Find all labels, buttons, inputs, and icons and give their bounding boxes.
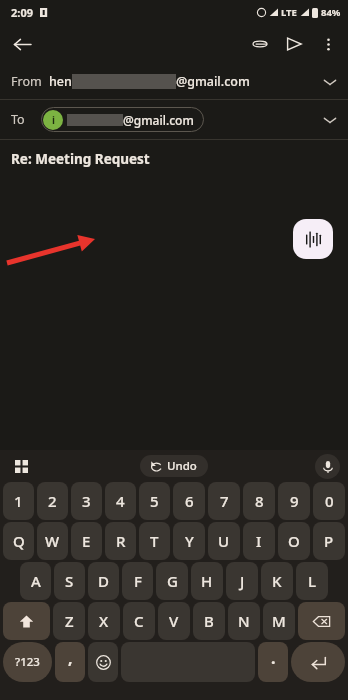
staticText: C <box>134 611 144 631</box>
button[interactable]: To <box>0 100 348 139</box>
button[interactable]: X <box>88 602 120 640</box>
button[interactable]: C <box>123 602 155 640</box>
button[interactable]: , <box>55 642 85 682</box>
button[interactable]: 7 <box>208 482 240 520</box>
button[interactable]: T <box>139 522 170 560</box>
staticText: LTE <box>281 6 297 19</box>
staticText: hen <box>49 73 72 90</box>
button[interactable]: K <box>261 562 293 600</box>
button[interactable]: U <box>208 522 240 560</box>
button[interactable]: Undo <box>140 455 208 477</box>
button[interactable]: Z <box>53 602 85 640</box>
staticText: F <box>134 571 142 591</box>
button[interactable]: Re: Meeting Request <box>0 140 348 178</box>
button[interactable]: A <box>20 562 51 600</box>
staticText: 9 <box>290 491 299 511</box>
button[interactable]: Send <box>277 27 311 61</box>
staticText: @gmail.com <box>123 112 194 128</box>
staticText: J <box>240 571 245 591</box>
button[interactable]: J <box>226 562 258 600</box>
button[interactable]: E <box>71 522 102 560</box>
staticText: 0 <box>325 491 334 511</box>
staticText: 2 <box>48 491 57 511</box>
staticText: H <box>201 571 213 591</box>
button[interactable]: 4 <box>105 482 136 520</box>
button[interactable]: Emoji <box>88 642 118 682</box>
button[interactable]: F <box>122 562 153 600</box>
button[interactable]: 5 <box>139 482 170 520</box>
button[interactable]: Voice input <box>293 219 333 259</box>
button[interactable]: Keyboard options <box>7 452 35 480</box>
button[interactable]: Enter <box>291 642 345 682</box>
staticText: V <box>169 611 179 631</box>
button[interactable]: More options <box>311 27 345 61</box>
staticText: X <box>99 611 109 631</box>
staticText: G <box>167 571 178 591</box>
button[interactable]: V <box>158 602 190 640</box>
button[interactable]: R <box>105 522 136 560</box>
staticText: I <box>256 531 262 551</box>
staticText: A <box>31 571 41 591</box>
staticText: Re: Meeting Request <box>11 150 150 168</box>
button[interactable]: 6 <box>173 482 205 520</box>
staticText: K <box>272 571 282 591</box>
button[interactable]: 8 <box>243 482 275 520</box>
staticText: T <box>150 531 159 551</box>
staticText: 2:09 <box>11 5 33 20</box>
button[interactable]: Q <box>3 522 34 560</box>
button[interactable]: D <box>88 562 119 600</box>
button[interactable]: 9 <box>278 482 310 520</box>
button[interactable]: Voice typing <box>315 454 340 479</box>
staticText: W <box>45 531 60 551</box>
staticText: 3 <box>82 491 91 511</box>
staticText: 8 <box>255 491 264 511</box>
staticText: Undo <box>167 458 197 474</box>
button[interactable]: Back <box>5 27 39 61</box>
staticText: S <box>65 571 74 591</box>
staticText: Q <box>13 531 25 551</box>
staticText: 1 <box>14 491 23 511</box>
button[interactable]: I <box>243 522 275 560</box>
button[interactable]: H <box>191 562 223 600</box>
button[interactable]: B <box>193 602 225 640</box>
button[interactable]: Y <box>173 522 205 560</box>
staticText: U <box>218 531 230 551</box>
button[interactable]: 1 <box>3 482 34 520</box>
button[interactable]: W <box>37 522 68 560</box>
button[interactable]: Attach file <box>243 27 277 61</box>
staticText: . <box>271 647 276 669</box>
button[interactable]: N <box>228 602 260 640</box>
staticText: i <box>52 113 55 127</box>
staticText: 4 <box>116 491 125 511</box>
button[interactable]: From <box>0 64 348 99</box>
button[interactable]: Backspace <box>298 602 345 640</box>
button[interactable]: S <box>54 562 85 600</box>
button[interactable]: 3 <box>71 482 102 520</box>
staticText: Y <box>185 531 194 551</box>
staticText: N <box>238 611 250 631</box>
staticText: P <box>324 531 334 551</box>
button[interactable]: 2 <box>37 482 68 520</box>
staticText: To <box>11 111 25 128</box>
button[interactable]: O <box>278 522 310 560</box>
staticText: From <box>11 73 42 90</box>
staticText: R <box>116 531 126 551</box>
staticText: Z <box>65 611 74 631</box>
button[interactable]: L <box>296 562 328 600</box>
staticText: ?123 <box>15 654 40 670</box>
button[interactable]: ?123 <box>3 642 52 682</box>
staticText: O <box>288 531 300 551</box>
button[interactable]: Shift <box>3 602 50 640</box>
button[interactable]: . <box>258 642 288 682</box>
staticText: D <box>98 571 109 591</box>
staticText: E <box>82 531 91 551</box>
staticText: 7 <box>220 491 229 511</box>
staticText: M <box>272 611 286 631</box>
button[interactable]: P <box>313 522 345 560</box>
staticText: 6 <box>185 491 194 511</box>
button[interactable]: G <box>156 562 188 600</box>
button[interactable]: 0 <box>313 482 345 520</box>
staticText: L <box>308 571 317 591</box>
button[interactable]: M <box>263 602 295 640</box>
